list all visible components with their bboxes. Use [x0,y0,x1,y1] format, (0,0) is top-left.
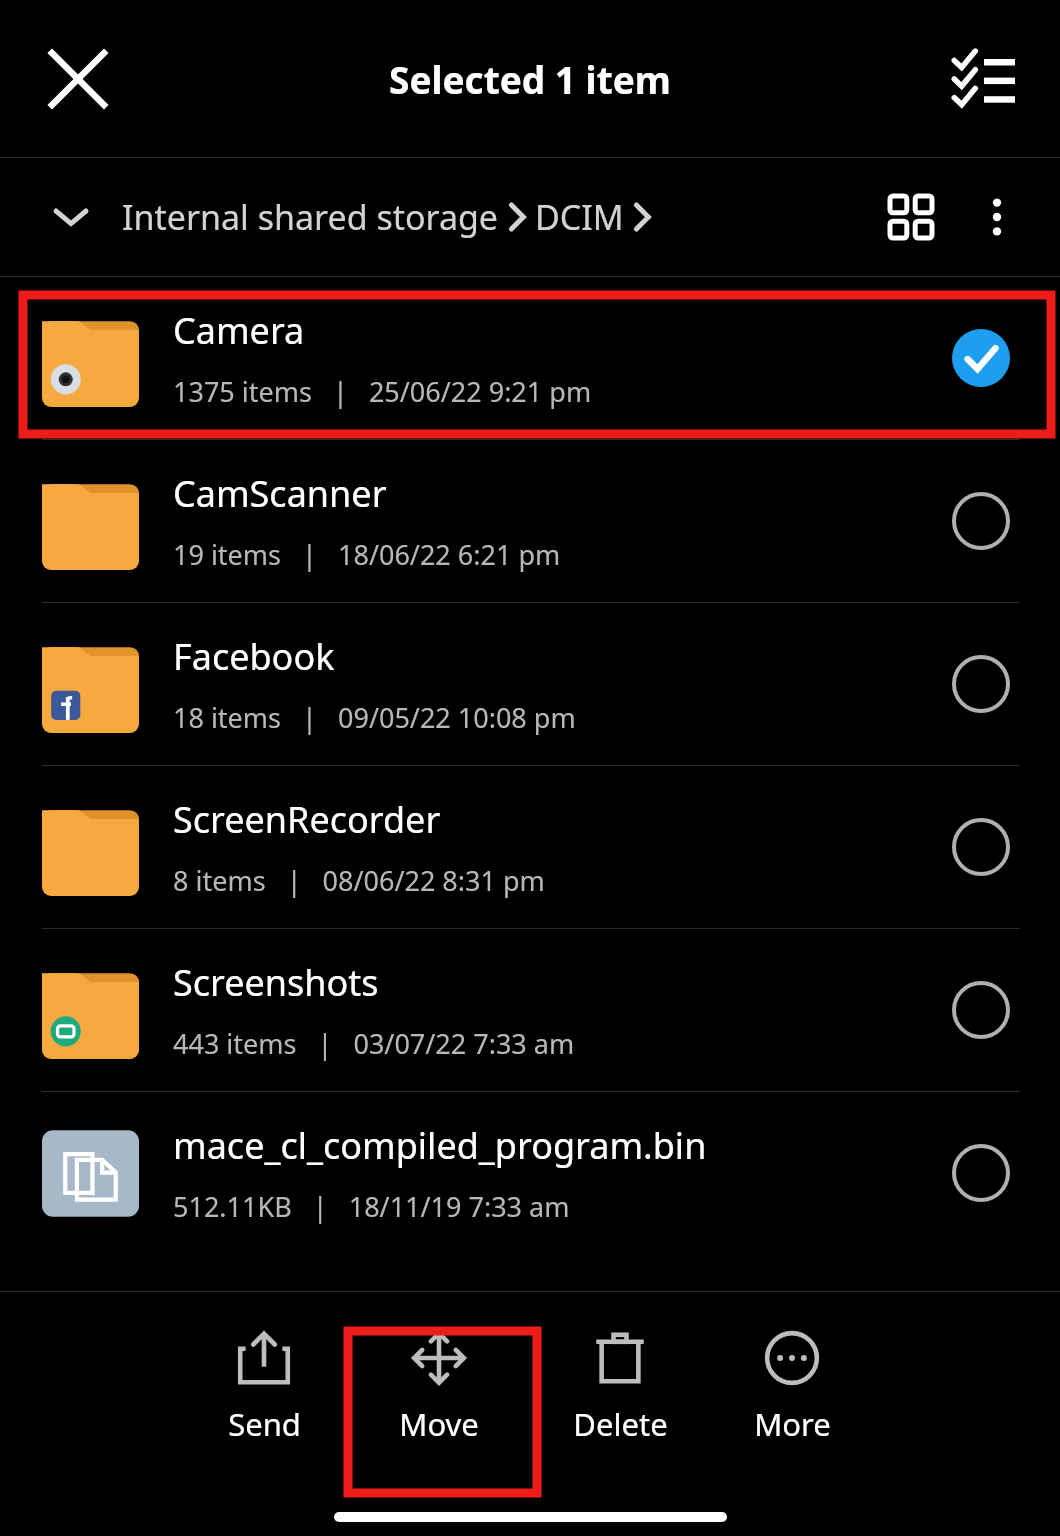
button[interactable]: Selected [942,319,1020,397]
staticText: Send [228,1403,301,1445]
staticText: 19 items | 18/06/22 6:21 pm [173,536,561,573]
button[interactable]: Move [344,1331,533,1454]
staticText: 512.11KB | 18/11/19 7:33 am [173,1188,570,1225]
staticText: Delete [573,1403,668,1445]
button[interactable]: Expand path [40,186,102,248]
staticText: ScreenRecorder [173,795,441,844]
staticText: Internal shared storage [122,194,499,240]
staticText: Selected 1 item [389,54,671,104]
staticText: DCIM [535,194,624,240]
staticText: CamScanner [173,469,387,518]
staticText: More [754,1403,831,1445]
button[interactable]: Facebook [0,603,1060,765]
staticText: Camera [173,306,305,355]
button[interactable]: Select [942,971,1020,1049]
button[interactable]: CamScanner [0,440,1060,602]
button[interactable]: More [707,1331,877,1454]
staticText: 443 items | 03/07/22 7:33 am [173,1025,575,1062]
button[interactable]: Send [184,1331,344,1454]
staticText: mace_cl_compiled_program.bin [173,1121,707,1170]
button[interactable]: Grid view [868,174,954,260]
button[interactable]: Camera [0,277,1060,439]
button[interactable]: Select [942,482,1020,560]
button[interactable]: Select [942,808,1020,886]
staticText: 1375 items | 25/06/22 9:21 pm [173,373,592,410]
button[interactable]: mace_cl_compiled_program.bin [0,1092,1060,1254]
button[interactable]: Internal shared storage [122,194,660,240]
staticText: Move [399,1403,479,1445]
button[interactable]: Select [942,1134,1020,1212]
button[interactable]: More options [954,174,1040,260]
staticText: 18 items | 09/05/22 10:08 pm [173,699,576,736]
button[interactable]: Delete [533,1331,707,1454]
button[interactable]: Screenshots [0,929,1060,1091]
staticText: Facebook [173,632,335,681]
staticText: Screenshots [173,958,379,1007]
button[interactable]: Close [28,29,128,129]
staticText: 8 items | 08/06/22 8:31 pm [173,862,545,899]
button[interactable]: Select [942,645,1020,723]
button[interactable]: Select all [934,29,1034,129]
button[interactable]: ScreenRecorder [0,766,1060,928]
